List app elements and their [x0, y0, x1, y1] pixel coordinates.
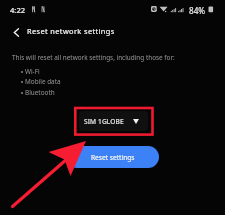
staticText: This will reset all network settings, in…	[12, 53, 175, 62]
staticText: 84%	[189, 5, 206, 16]
staticText: 4:22	[10, 5, 26, 15]
button[interactable]: SIM 1GLOBE	[79, 111, 148, 131]
staticText: Reset network settings	[27, 26, 115, 36]
staticText: Reset settings	[91, 153, 135, 162]
staticText: SIM 1GLOBE	[84, 117, 124, 126]
staticText: Mobile data	[25, 77, 61, 86]
button[interactable]: Reset settings	[66, 146, 159, 168]
staticText: Bluetooth	[25, 88, 55, 97]
button[interactable]: Back	[6, 22, 26, 42]
staticText: Wi-Fi	[25, 67, 40, 76]
